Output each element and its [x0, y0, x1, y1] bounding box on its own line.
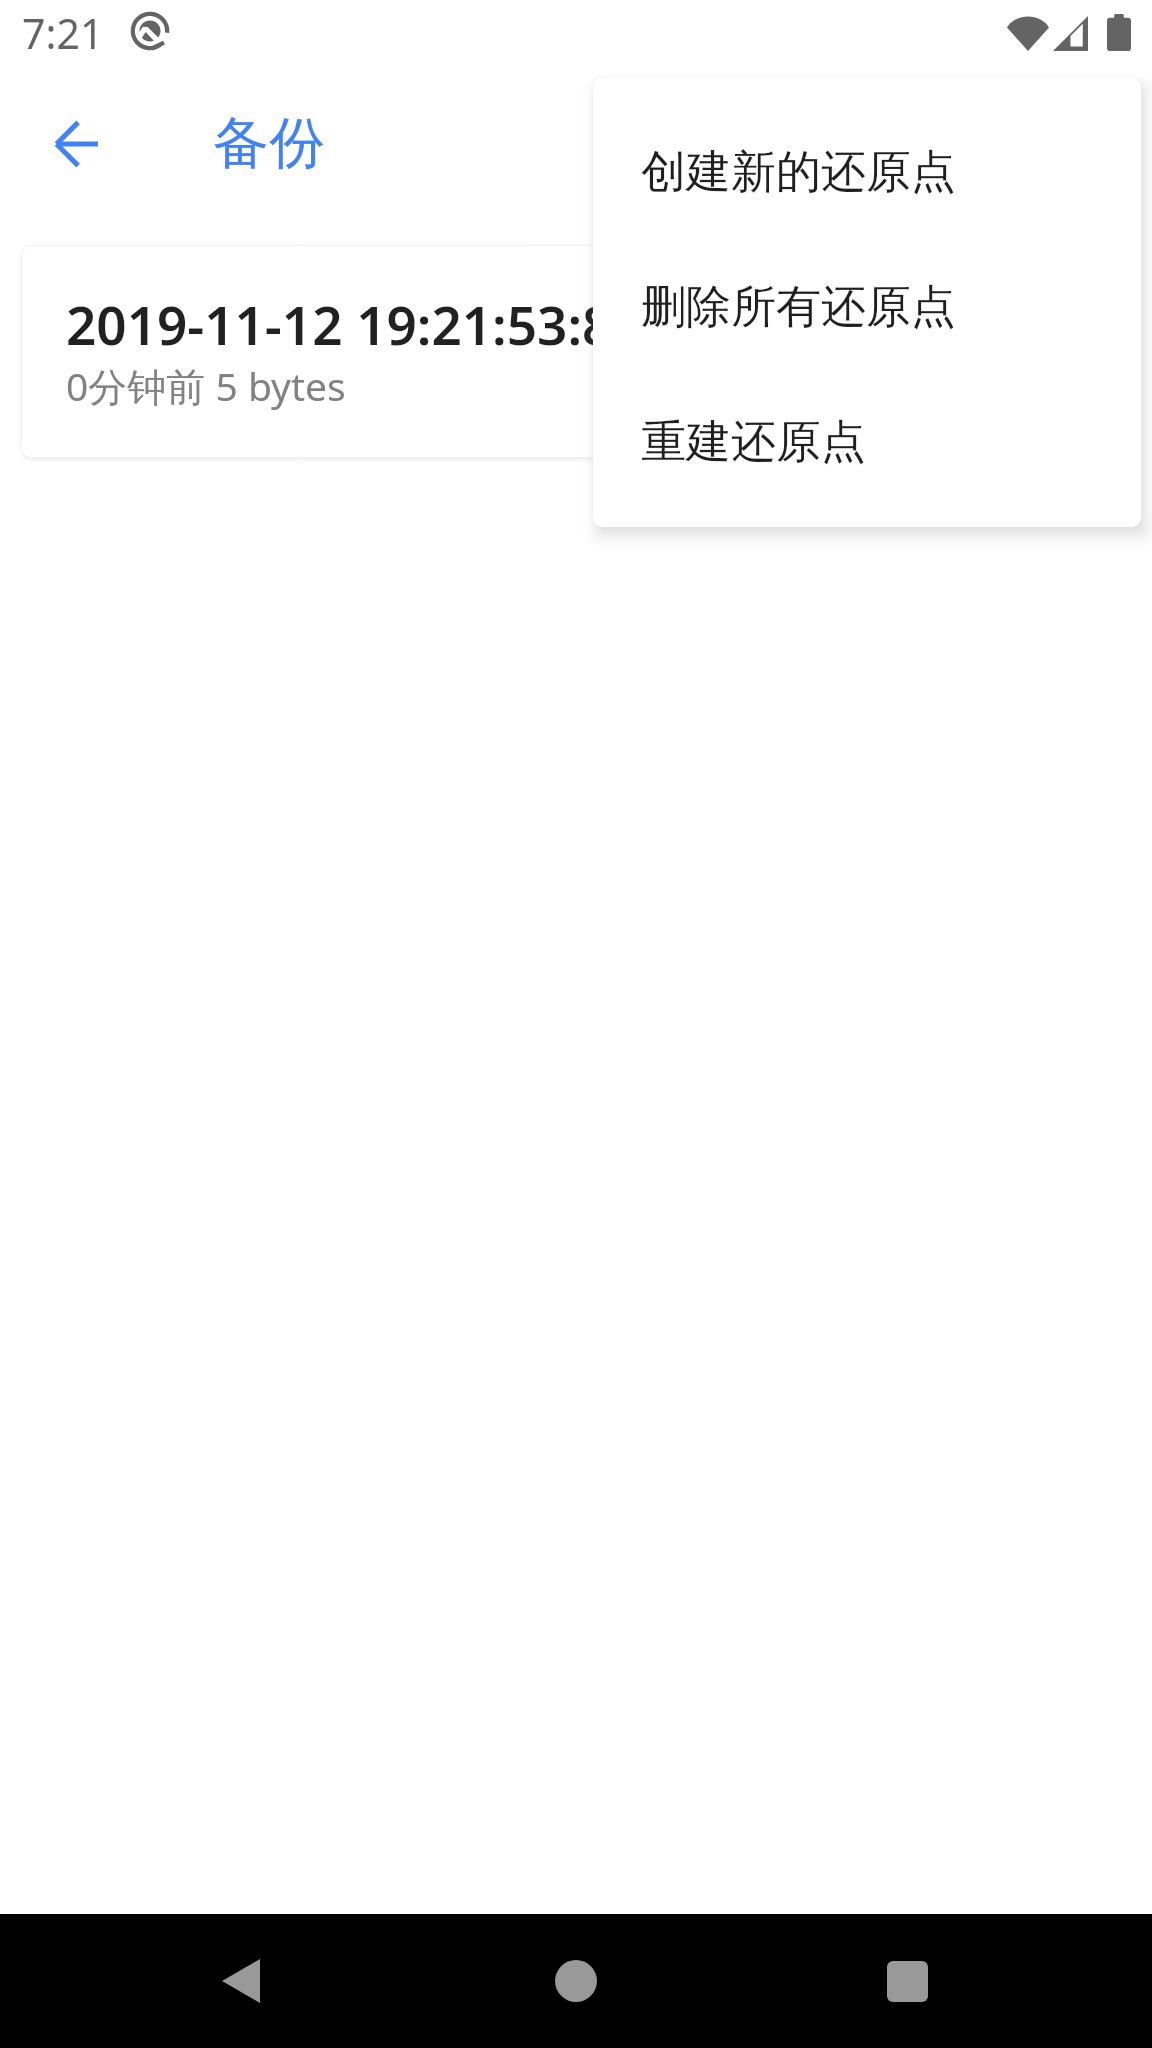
staticText: 2019-11-12 19:21:53:873 [66, 288, 673, 360]
button[interactable]: 删除所有还原点 [593, 240, 1141, 375]
staticText: 创建新的还原点 [641, 144, 956, 201]
staticText: 备份 [213, 108, 325, 179]
button[interactable]: Back [29, 96, 125, 192]
button[interactable]: Home [504, 1914, 648, 2048]
button[interactable]: Recents [835, 1914, 979, 2048]
button[interactable]: 创建新的还原点 [593, 105, 1141, 240]
button[interactable]: 2019-11-12 19:21:53:873 [21, 245, 1131, 458]
staticText: 重建还原点 [641, 414, 866, 471]
staticText: 7:21 [22, 5, 104, 61]
button[interactable]: Back [168, 1914, 312, 2048]
staticText: 删除所有还原点 [641, 279, 956, 336]
button[interactable]: 重建还原点 [593, 375, 1141, 510]
staticText: 0分钟前 5 bytes [66, 359, 346, 412]
